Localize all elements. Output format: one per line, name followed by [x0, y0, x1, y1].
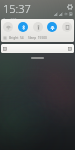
button[interactable]: Rotate [62, 22, 72, 32]
staticText: Sleep 15500 [28, 36, 47, 40]
button[interactable] [1, 44, 74, 53]
button[interactable]: Settings [67, 4, 73, 10]
button[interactable] [0, 56, 75, 59]
button[interactable]: Sound [47, 22, 57, 32]
button[interactable]: Flashlight [33, 22, 43, 32]
button[interactable]: Bluetooth [18, 22, 28, 32]
staticText: Bright 54 [9, 36, 24, 40]
staticText: Aug 7 Mon [3, 17, 21, 19]
button[interactable]: Wi-Fi [3, 22, 13, 32]
staticText: 15:37 [3, 1, 31, 16]
